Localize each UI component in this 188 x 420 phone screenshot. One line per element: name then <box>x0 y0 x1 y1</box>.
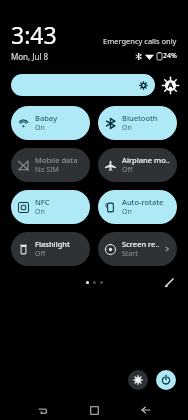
button[interactable]: Babay <box>11 106 90 140</box>
button[interactable]: Recents <box>32 400 52 420</box>
staticText: On <box>35 123 45 133</box>
button[interactable]: Airplane mo.. <box>98 148 177 182</box>
button[interactable]: Settings <box>128 370 148 390</box>
button[interactable]: Power <box>156 370 176 390</box>
staticText: Off <box>35 249 46 259</box>
staticText: Babay <box>35 113 58 123</box>
staticText: No SIM <box>35 165 59 175</box>
button[interactable]: Mobile data <box>11 148 90 182</box>
button[interactable]: Flashlight <box>11 232 90 266</box>
staticText: On <box>35 207 45 217</box>
button[interactable]: Screen re.. <box>98 232 177 266</box>
staticText: Bluetooth <box>122 113 158 123</box>
button[interactable]: Back <box>136 400 156 420</box>
button[interactable]: NFC <box>11 190 90 224</box>
staticText: Flashlight <box>35 239 70 249</box>
staticText: NFC <box>35 197 50 207</box>
staticText: 3:43 <box>11 19 57 50</box>
staticText: Mobile data <box>35 155 78 165</box>
button[interactable]: Auto brightness <box>162 77 179 94</box>
button[interactable]: Home <box>84 400 104 420</box>
staticText: Start <box>122 249 138 259</box>
staticText: Off <box>122 165 133 175</box>
staticText: Mon, Jul 8 <box>11 51 49 62</box>
staticText: Auto-rotate <box>122 197 164 207</box>
staticText: 24% <box>163 51 177 61</box>
button[interactable]: Auto-rotate <box>98 190 177 224</box>
staticText: On <box>122 123 132 133</box>
button[interactable]: Brightness <box>11 74 155 96</box>
staticText: Airplane mo.. <box>122 155 170 165</box>
staticText: Screen re.. <box>122 239 160 249</box>
button[interactable]: Bluetooth <box>98 106 177 140</box>
staticText: Emergency calls only <box>103 36 177 46</box>
button[interactable]: Edit tiles <box>162 275 176 289</box>
staticText: On <box>122 207 132 217</box>
